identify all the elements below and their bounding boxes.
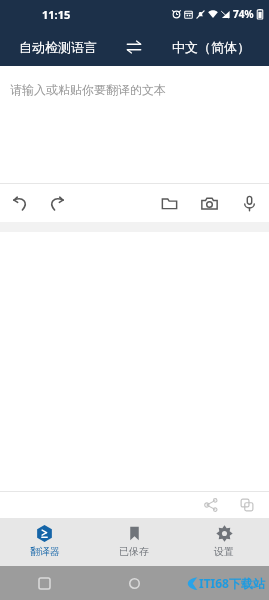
staticText: 自动检测语言 xyxy=(19,39,97,55)
button[interactable]: Camera xyxy=(195,189,223,217)
button[interactable]: Swap languages xyxy=(115,28,153,66)
button[interactable]: 设置 xyxy=(179,518,269,566)
button[interactable]: 已保存 xyxy=(89,518,179,566)
button[interactable]: Home xyxy=(89,566,179,600)
staticText: ITI68下载站 xyxy=(199,575,265,591)
button[interactable]: Undo xyxy=(6,189,34,217)
button[interactable]: Copy xyxy=(233,492,261,518)
button[interactable]: 自动检测语言 xyxy=(0,28,115,66)
button[interactable]: Share xyxy=(197,492,225,518)
staticText: 设置 xyxy=(214,545,234,558)
button[interactable]: Redo xyxy=(42,189,70,217)
button[interactable]: Open document xyxy=(155,189,183,217)
button[interactable]: 中文（简体） xyxy=(153,28,269,66)
staticText: 翻译器 xyxy=(30,545,60,558)
staticText: 请输入或粘贴你要翻译的文本 xyxy=(10,82,166,97)
staticText: 已保存 xyxy=(119,545,149,558)
staticText: 74% xyxy=(233,7,254,21)
button[interactable]: Voice input xyxy=(235,189,263,217)
button[interactable]: Recents xyxy=(0,566,89,600)
button[interactable]: 翻译器 xyxy=(0,518,89,566)
button[interactable]: 请输入或粘贴你要翻译的文本 xyxy=(0,66,269,183)
staticText: 中文（简体） xyxy=(172,39,250,55)
staticText: 11:15 xyxy=(42,7,71,22)
